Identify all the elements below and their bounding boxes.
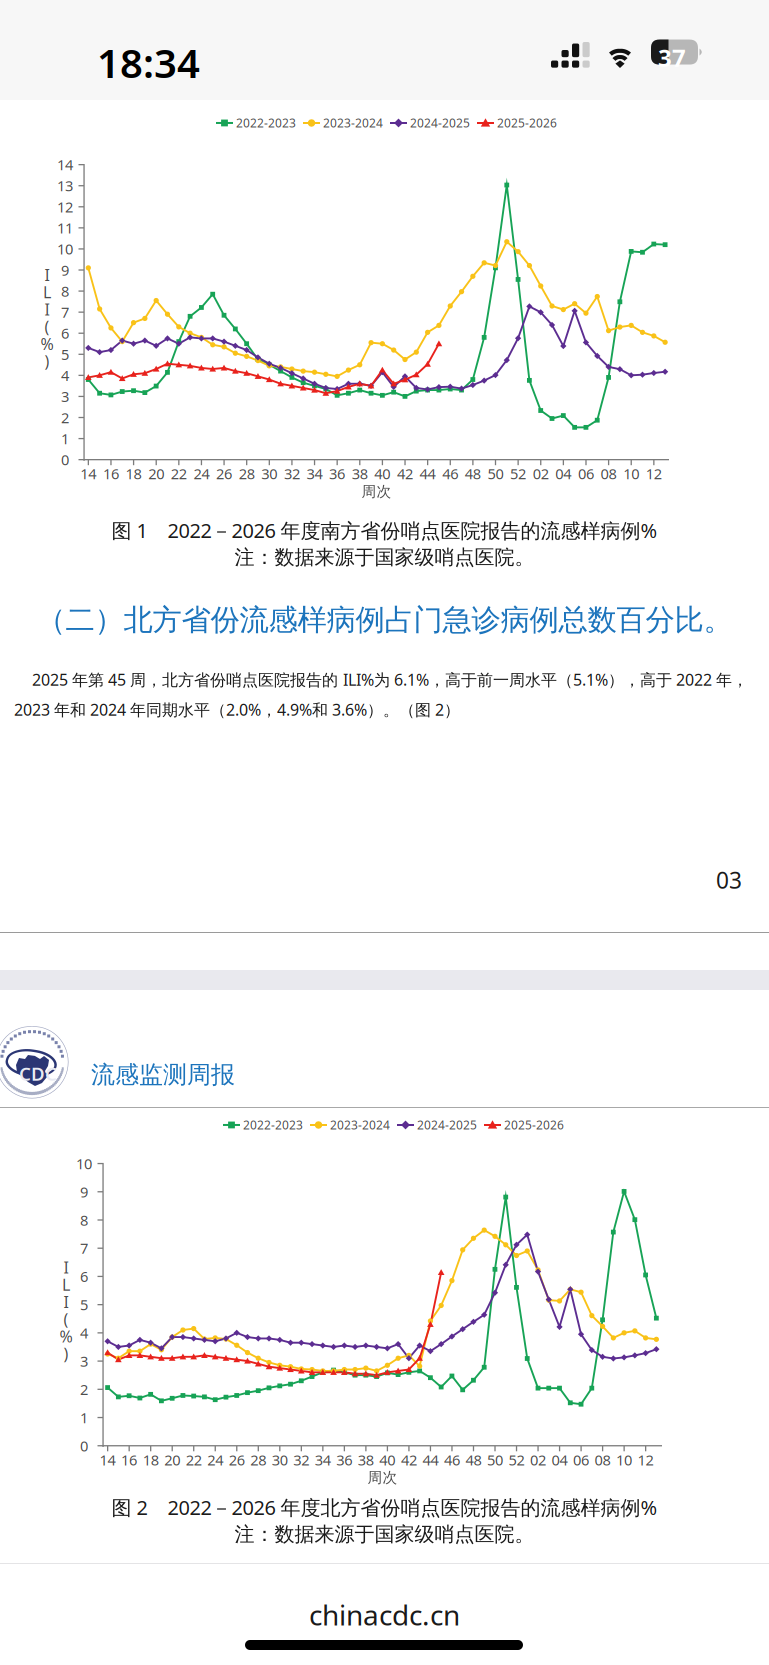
- staticText: (: [44, 316, 49, 337]
- staticText: 2: [61, 408, 69, 427]
- staticText: 10: [623, 464, 639, 483]
- staticText: chinacdc.cn: [309, 1596, 460, 1633]
- staticText: L: [43, 281, 51, 302]
- staticText: 26: [229, 1450, 245, 1469]
- staticText: 18: [125, 464, 141, 483]
- staticText: I: [63, 1291, 68, 1312]
- staticText: 50: [487, 1450, 503, 1469]
- staticText: 6: [61, 323, 69, 343]
- staticText: I: [44, 299, 49, 320]
- staticText: 46: [442, 464, 458, 483]
- staticText: 08: [595, 1450, 611, 1469]
- staticText: 12: [638, 1450, 654, 1469]
- staticText: 37: [658, 42, 686, 73]
- staticText: 14: [80, 464, 96, 483]
- staticText: 48: [465, 464, 481, 483]
- staticText: 6: [80, 1267, 88, 1286]
- staticText: %: [40, 333, 53, 354]
- staticText: 1: [80, 1408, 88, 1427]
- staticText: 4: [80, 1323, 88, 1343]
- staticText: I: [44, 264, 49, 285]
- staticText: 42: [397, 464, 413, 483]
- staticText: 3: [80, 1351, 88, 1371]
- staticText: 36: [329, 464, 345, 483]
- staticText: 1: [61, 429, 69, 448]
- staticText: 2022-2023: [236, 115, 296, 131]
- staticText: 24: [193, 464, 209, 483]
- staticText: 周次: [361, 483, 391, 501]
- staticText: 注：数据来源于国家级哨点医院。: [234, 545, 534, 570]
- staticText: 2023-2024: [330, 1117, 390, 1133]
- staticText: 04: [555, 464, 571, 483]
- staticText: 16: [103, 464, 119, 483]
- staticText: 03: [716, 865, 742, 895]
- staticText: (: [63, 1308, 68, 1329]
- staticText: 2023 年和 2024 年同期水平（2.0%，4.9%和 3.6%）。（图 2…: [14, 699, 460, 720]
- staticText: 08: [601, 464, 617, 483]
- staticText: 图 2 2022－2026 年度北方省份哨点医院报告的流感样病例%: [111, 1494, 657, 1521]
- staticText: （二）北方省份流感样病例占门急诊病例总数百分比。: [36, 602, 732, 638]
- staticText: 52: [508, 1450, 524, 1469]
- staticText: 32: [284, 464, 300, 483]
- staticText: 42: [401, 1450, 417, 1469]
- staticText: 38: [358, 1450, 374, 1469]
- staticText: CDC: [19, 1061, 57, 1086]
- staticText: 8: [61, 281, 69, 301]
- staticText: 7: [80, 1238, 88, 1258]
- staticText: 28: [239, 464, 255, 483]
- staticText: 10: [76, 1154, 92, 1173]
- staticText: 13: [57, 176, 73, 195]
- staticText: 2025-2026: [504, 1117, 564, 1133]
- staticText: 12: [57, 197, 73, 216]
- staticText: 06: [573, 1450, 589, 1469]
- staticText: 02: [530, 1450, 546, 1469]
- staticText: 46: [444, 1450, 460, 1469]
- staticText: 40: [374, 464, 390, 483]
- staticText: 9: [61, 260, 69, 280]
- staticText: 36: [336, 1450, 352, 1469]
- staticText: 40: [379, 1450, 395, 1469]
- staticText: 2024-2025: [410, 115, 470, 131]
- staticText: ): [63, 1343, 68, 1364]
- staticText: 7: [61, 302, 69, 322]
- staticText: 周次: [367, 1469, 397, 1487]
- staticText: L: [62, 1274, 70, 1295]
- staticText: 注：数据来源于国家级哨点医院。: [234, 1522, 534, 1547]
- staticText: 22: [171, 464, 187, 483]
- staticText: 06: [578, 464, 594, 483]
- staticText: 44: [420, 464, 436, 483]
- staticText: ): [44, 350, 49, 371]
- staticText: 2024-2025: [417, 1117, 477, 1133]
- staticText: 50: [487, 464, 503, 483]
- staticText: 流感监测周报: [91, 1060, 235, 1089]
- staticText: 34: [315, 1450, 331, 1469]
- staticText: 24: [207, 1450, 223, 1469]
- staticText: 2025 年第 45 周，北方省份哨点医院报告的 ILI%为 6.1%，高于前一…: [32, 669, 748, 690]
- staticText: 8: [80, 1210, 88, 1230]
- staticText: 2023-2024: [323, 115, 383, 131]
- staticText: 10: [57, 239, 73, 259]
- staticText: 9: [80, 1182, 88, 1201]
- staticText: %: [59, 1326, 72, 1347]
- staticText: 52: [510, 464, 526, 483]
- staticText: 5: [80, 1295, 88, 1314]
- staticText: 图 1 2022－2026 年度南方省份哨点医院报告的流感样病例%: [111, 517, 657, 544]
- staticText: 0: [80, 1436, 88, 1455]
- staticText: 04: [551, 1450, 567, 1469]
- staticText: 5: [61, 344, 69, 364]
- staticText: 10: [616, 1450, 632, 1469]
- staticText: 4: [61, 366, 69, 385]
- staticText: 14: [100, 1450, 116, 1469]
- staticText: I: [63, 1257, 68, 1278]
- staticText: 34: [306, 464, 322, 483]
- staticText: 30: [272, 1450, 288, 1469]
- staticText: 02: [533, 464, 549, 483]
- staticText: 14: [57, 155, 73, 174]
- staticText: 30: [261, 464, 277, 483]
- staticText: 20: [148, 464, 164, 483]
- staticText: 18: [143, 1450, 159, 1469]
- staticText: 0: [61, 450, 69, 469]
- staticText: 16: [121, 1450, 137, 1469]
- staticText: 26: [216, 464, 232, 483]
- staticText: 44: [422, 1450, 438, 1469]
